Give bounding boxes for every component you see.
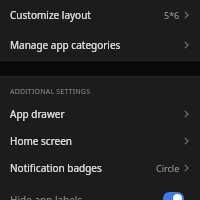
button[interactable]: Hide app labels <box>0 181 200 200</box>
staticText: Hide app labels <box>10 193 83 200</box>
button[interactable]: Notification badges <box>0 154 200 181</box>
button[interactable]: App drawer <box>0 100 200 127</box>
staticText: ADDITIONAL SETTINGS <box>10 87 91 97</box>
staticText: Home screen <box>10 134 73 148</box>
button[interactable]: Manage app categories <box>0 29 200 60</box>
staticText: Circle <box>156 162 180 174</box>
staticText: Notification badges <box>10 161 102 175</box>
staticText: Customize layout <box>10 8 91 22</box>
button[interactable]: Home screen <box>0 127 200 154</box>
staticText: Manage app categories <box>10 38 121 52</box>
button[interactable]: Customize layout <box>0 0 200 29</box>
staticText: 5*6 <box>164 9 180 21</box>
staticText: App drawer <box>10 107 65 121</box>
